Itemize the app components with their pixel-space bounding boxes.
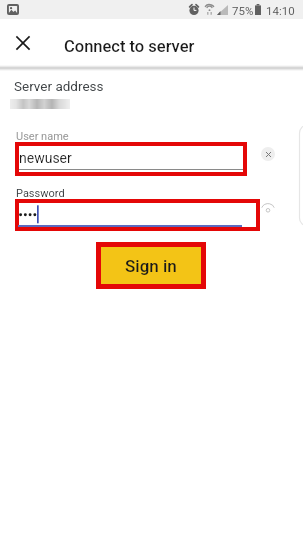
button[interactable]: Clear user name bbox=[261, 147, 275, 161]
staticText: 75% bbox=[232, 4, 254, 17]
staticText: User name bbox=[16, 130, 69, 143]
button[interactable]: Show password bbox=[261, 202, 275, 215]
staticText: 14:10 bbox=[266, 4, 295, 17]
staticText: Server address bbox=[14, 78, 104, 94]
button[interactable]: Sign in bbox=[101, 247, 201, 284]
button[interactable]: newuser bbox=[19, 146, 243, 172]
button[interactable]: Close bbox=[7, 27, 39, 59]
staticText: Sign in bbox=[125, 256, 177, 276]
button[interactable] bbox=[19, 203, 256, 227]
staticText: newuser bbox=[19, 150, 72, 166]
staticText: Connect to server bbox=[64, 37, 195, 56]
staticText: Password bbox=[16, 187, 65, 200]
